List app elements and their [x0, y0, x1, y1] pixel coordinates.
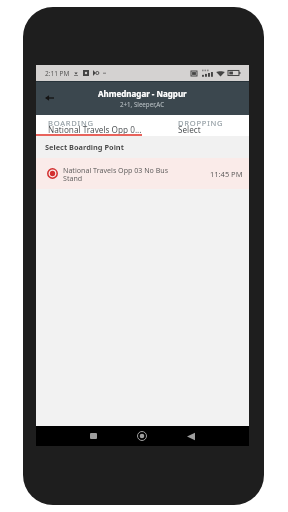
staticText: 2+1, Sleeper,AC [120, 100, 165, 108]
button[interactable]: National Travels Opp 03 No Bus Stand [36, 158, 249, 189]
button[interactable]: DROPPING [142, 115, 249, 136]
staticText: National Travels Opp 03 No Bus Stand [63, 165, 170, 183]
staticText: Select Boarding Point [45, 142, 124, 152]
staticText: DROPPING [178, 118, 224, 128]
button[interactable]: Back [39, 88, 59, 108]
button[interactable]: Home [132, 426, 152, 446]
staticText: National Travels Opp 0... [48, 124, 142, 135]
staticText: Ahmednagar - Nagpur [98, 88, 187, 99]
button[interactable]: Back [181, 426, 201, 446]
button[interactable]: Recents [83, 426, 103, 446]
staticText: 11:45 PM [210, 169, 243, 179]
staticText: BOARDING [48, 118, 94, 128]
button[interactable]: BOARDING [36, 115, 142, 136]
staticText: 2:11 PM [45, 69, 70, 78]
staticText: Select [178, 124, 201, 135]
